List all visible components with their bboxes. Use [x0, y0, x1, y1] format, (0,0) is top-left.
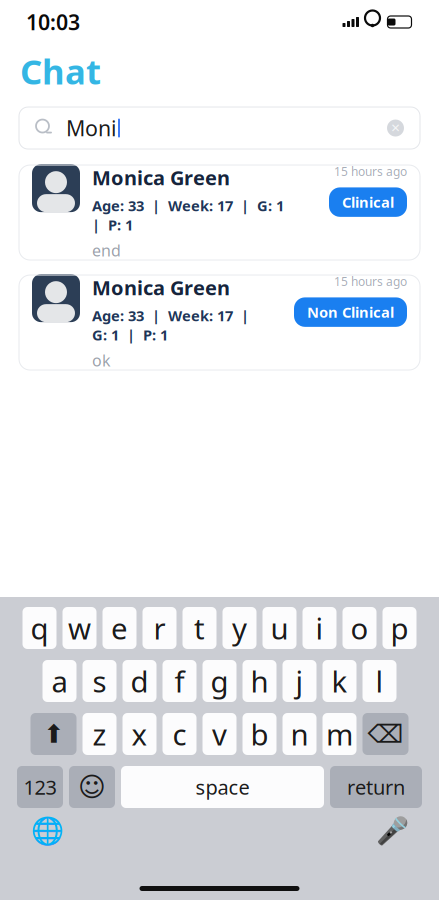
staticText: o	[350, 608, 368, 647]
staticText: Chat	[20, 48, 101, 94]
staticText: Age: 33 | Week: 17 | G: 1 | P: 1	[92, 196, 288, 235]
button[interactable]: x	[122, 713, 156, 755]
button[interactable]: t	[182, 607, 216, 649]
button[interactable]: Delete	[362, 713, 408, 755]
button[interactable]: m	[322, 713, 356, 755]
button[interactable]: Moni	[19, 107, 420, 149]
staticText: g	[210, 661, 228, 700]
staticText: j	[295, 661, 303, 700]
staticText: k	[331, 661, 347, 700]
staticText: f	[174, 661, 184, 700]
button[interactable]: n	[282, 713, 316, 755]
button[interactable]: q	[22, 607, 56, 649]
staticText: 15 hours ago	[334, 273, 407, 289]
button[interactable]: e	[102, 607, 136, 649]
staticText: s	[92, 661, 106, 700]
staticText: w	[68, 608, 91, 647]
button[interactable]: l	[362, 660, 396, 702]
staticText: 🎤	[375, 816, 408, 846]
staticText: p	[390, 608, 408, 647]
staticText: 10:03	[26, 8, 80, 36]
button[interactable]: k	[322, 660, 356, 702]
button[interactable]: Monica Green	[19, 275, 420, 370]
button[interactable]: g	[202, 660, 236, 702]
staticText: d	[130, 661, 148, 700]
staticText: 🌐	[30, 816, 63, 846]
button[interactable]: 123	[17, 766, 63, 808]
staticText: h	[250, 661, 268, 700]
staticText: ⬆	[43, 720, 64, 748]
button[interactable]: Dictation	[375, 814, 409, 848]
button[interactable]: y	[222, 607, 256, 649]
button[interactable]: b	[242, 713, 276, 755]
button[interactable]: i	[302, 607, 336, 649]
staticText: c	[172, 714, 186, 753]
staticText: Monica Green	[92, 164, 230, 191]
button[interactable]: s	[82, 660, 116, 702]
staticText: Clinical	[342, 192, 394, 212]
button[interactable]: f	[162, 660, 196, 702]
button[interactable]: r	[142, 607, 176, 649]
staticText: q	[30, 608, 48, 647]
staticText: u	[270, 608, 288, 647]
staticText: b	[250, 714, 268, 753]
staticText: i	[315, 608, 323, 647]
button[interactable]: Shift	[30, 713, 76, 755]
staticText: return	[347, 774, 405, 800]
button[interactable]: d	[122, 660, 156, 702]
button[interactable]: Emoji	[69, 766, 115, 808]
staticText: ⌫	[367, 720, 403, 748]
button[interactable]: return	[330, 766, 422, 808]
staticText: end	[92, 240, 121, 261]
staticText: 15 hours ago	[334, 163, 407, 179]
staticText: Monica Green	[92, 274, 230, 301]
staticText: Non Clinical	[307, 302, 394, 322]
button[interactable]: space	[121, 766, 324, 808]
button[interactable]: h	[242, 660, 276, 702]
button[interactable]: z	[82, 713, 116, 755]
staticText: Moni	[66, 114, 117, 142]
button[interactable]: v	[202, 713, 236, 755]
staticText: v	[212, 714, 227, 753]
staticText: ☺	[78, 772, 106, 802]
staticText: a	[51, 661, 67, 700]
button[interactable]: Next keyboard	[30, 814, 64, 848]
staticText: t	[194, 608, 205, 647]
staticText: z	[92, 714, 106, 753]
staticText: space	[195, 774, 249, 800]
staticText: l	[375, 661, 383, 700]
button[interactable]: w	[62, 607, 96, 649]
staticText: ok	[92, 350, 111, 371]
staticText: Age: 33 | Week: 17 | G: 1 | P: 1	[92, 306, 253, 345]
staticText: y	[232, 608, 247, 647]
button[interactable]: u	[262, 607, 296, 649]
staticText: 123	[23, 774, 56, 800]
staticText: r	[153, 608, 165, 647]
staticText: x	[131, 714, 147, 753]
button[interactable]: c	[162, 713, 196, 755]
button[interactable]: j	[282, 660, 316, 702]
staticText: e	[111, 608, 128, 647]
button[interactable]: o	[342, 607, 376, 649]
staticText: ✕	[390, 121, 400, 135]
button[interactable]: p	[382, 607, 416, 649]
staticText: m	[326, 714, 353, 753]
button[interactable]: a	[42, 660, 76, 702]
staticText: n	[290, 714, 308, 753]
button[interactable]: Monica Green	[19, 165, 420, 260]
